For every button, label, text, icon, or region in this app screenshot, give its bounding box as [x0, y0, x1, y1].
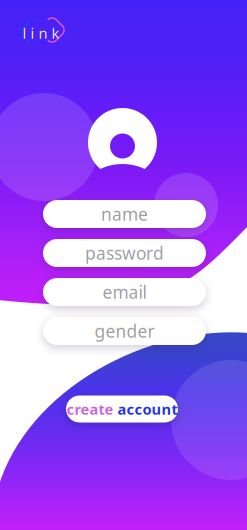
button[interactable]: name [43, 200, 206, 228]
staticText: account [117, 399, 177, 419]
button[interactable]: gender [43, 317, 206, 345]
button[interactable]: create [66, 395, 178, 422]
staticText: password [85, 241, 164, 264]
staticText: create [66, 399, 113, 419]
staticText: email [102, 280, 146, 303]
button[interactable]: email [43, 278, 206, 306]
staticText: gender [94, 319, 154, 342]
staticText: l i n k [22, 23, 59, 43]
button[interactable]: password [43, 239, 206, 267]
staticText: name [101, 202, 148, 225]
